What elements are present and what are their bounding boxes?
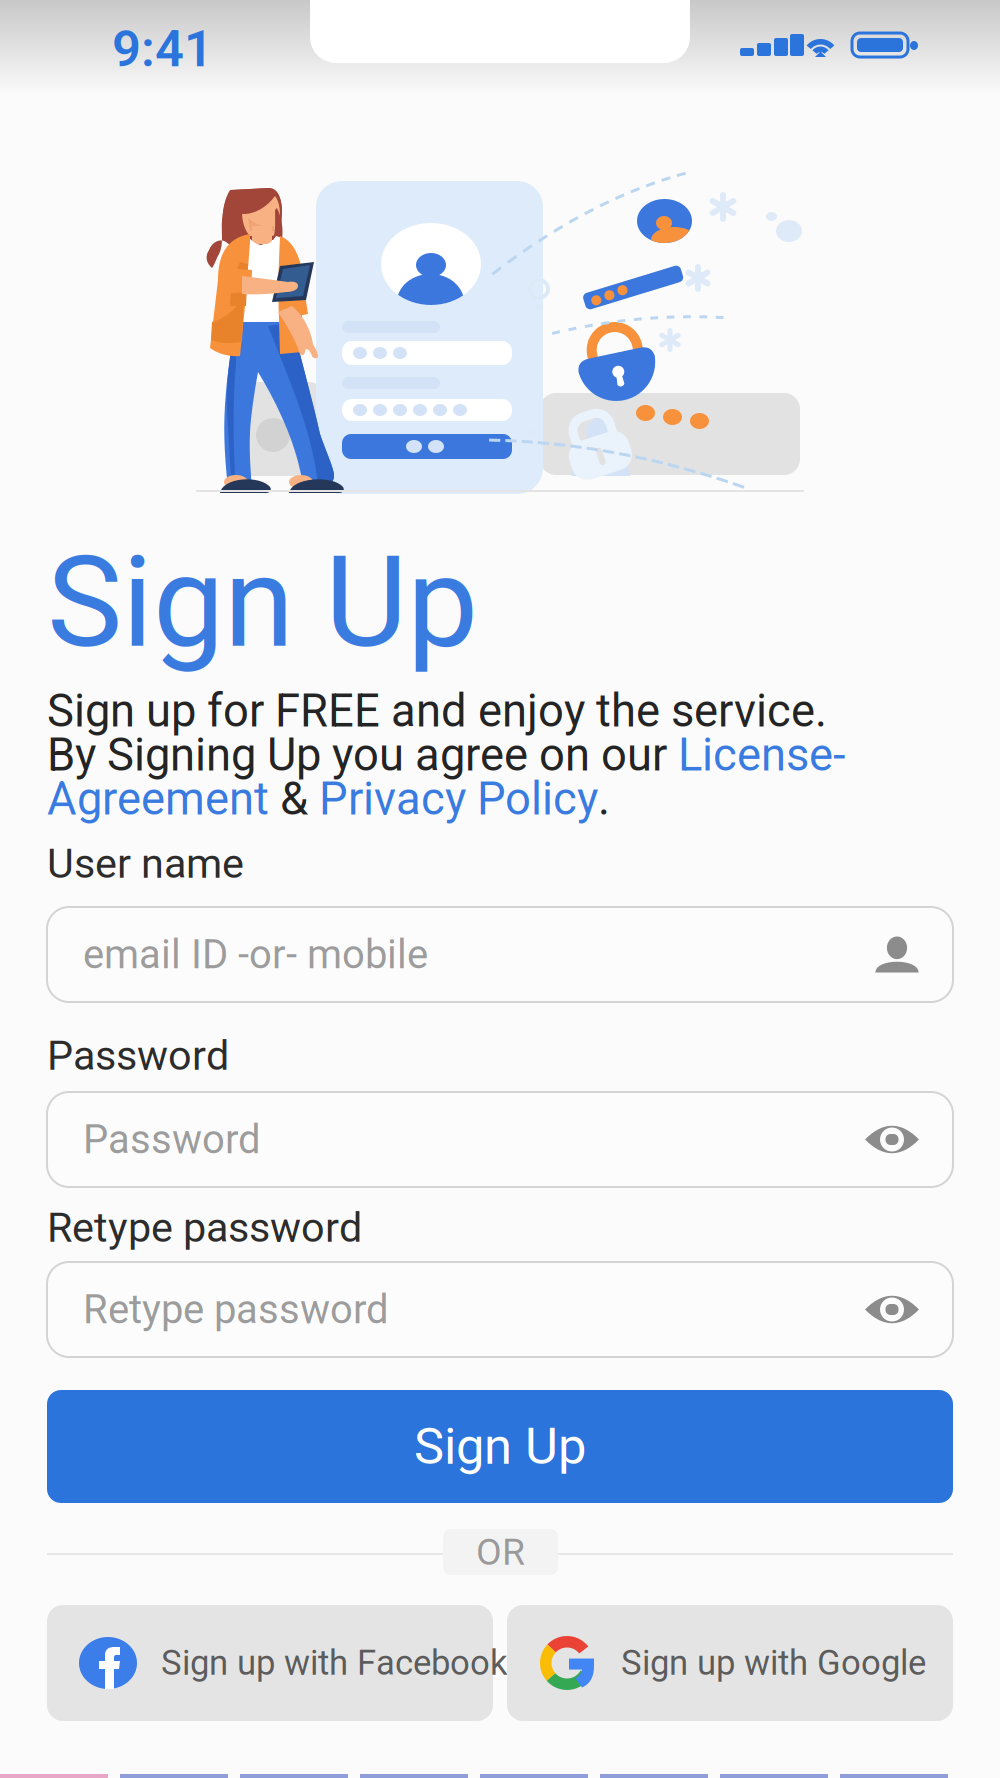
- staticText: email ID -or- mobile: [83, 932, 428, 977]
- staticText: 9:41: [112, 20, 213, 66]
- staticText: By Signing Up you agree on our: [47, 729, 678, 781]
- staticText: Retype password: [83, 1287, 389, 1332]
- staticText: Agreement: [47, 773, 269, 825]
- staticText: Privacy Policy: [319, 773, 598, 825]
- staticText: OR: [476, 1531, 525, 1573]
- button[interactable]: Sign up with Google: [507, 1605, 953, 1721]
- staticText: Sign up for FREE and enjoy the service.: [47, 685, 827, 731]
- staticText: User name: [47, 840, 244, 886]
- staticText: Sign Up: [47, 530, 478, 642]
- button[interactable]: Sign Up: [47, 1390, 953, 1503]
- button[interactable]: email ID -or- mobile: [47, 907, 953, 1002]
- staticText: Sign Up: [414, 1418, 586, 1475]
- staticText: .: [598, 773, 610, 825]
- staticText: Password: [47, 1032, 229, 1078]
- staticText: License-: [678, 729, 846, 781]
- staticText: Sign up with Facebook: [161, 1643, 508, 1683]
- staticText: &: [269, 773, 319, 825]
- button[interactable]: Password: [47, 1092, 953, 1187]
- button[interactable]: Retype password: [47, 1262, 953, 1357]
- button[interactable]: Sign up with Facebook: [47, 1605, 493, 1721]
- staticText: Retype password: [47, 1204, 362, 1250]
- staticText: Sign up with Google: [621, 1643, 926, 1683]
- staticText: Password: [83, 1117, 261, 1162]
